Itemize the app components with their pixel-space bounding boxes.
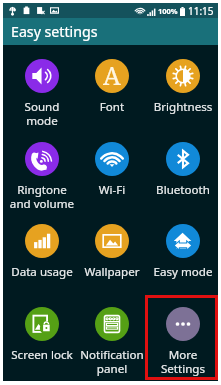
button[interactable]: Ringtone and volume xyxy=(7,142,77,211)
staticText: Ringtone and volume xyxy=(7,182,77,211)
staticText: Data usage xyxy=(7,264,77,280)
staticText: Notification panel xyxy=(77,347,147,376)
button[interactable]: Data usage xyxy=(7,224,77,280)
staticText: Sound mode xyxy=(7,99,77,128)
button[interactable]: Wallpaper xyxy=(77,224,147,280)
button[interactable]: Screen lock xyxy=(7,307,77,363)
button[interactable]: Brightness xyxy=(148,59,218,115)
staticText: Font xyxy=(77,99,147,115)
button[interactable]: Font xyxy=(77,59,147,115)
staticText: Easy settings xyxy=(11,22,98,41)
button[interactable]: More Settings xyxy=(148,307,218,376)
button[interactable]: Wi-Fi xyxy=(77,142,147,198)
staticText: More Settings xyxy=(148,347,218,376)
button[interactable]: Easy settings xyxy=(3,18,218,45)
staticText: Wi-Fi xyxy=(77,182,147,198)
staticText: 11:15 xyxy=(188,4,214,18)
staticText: Bluetooth xyxy=(148,182,218,198)
button[interactable]: Bluetooth xyxy=(148,142,218,198)
staticText: 100% xyxy=(158,6,178,16)
button[interactable]: Notification panel xyxy=(77,307,147,376)
staticText: Screen lock xyxy=(7,347,77,363)
staticText: Brightness xyxy=(148,99,218,115)
button[interactable]: Sound mode xyxy=(7,59,77,128)
staticText: Wallpaper xyxy=(77,264,147,280)
staticText: Easy mode xyxy=(148,264,218,280)
staticText: A xyxy=(103,59,121,92)
button[interactable]: Easy mode xyxy=(148,224,218,280)
